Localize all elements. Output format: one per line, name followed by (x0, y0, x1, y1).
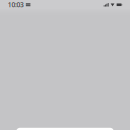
button[interactable] (0, 128, 130, 130)
staticText: 10:03 (8, 0, 24, 9)
